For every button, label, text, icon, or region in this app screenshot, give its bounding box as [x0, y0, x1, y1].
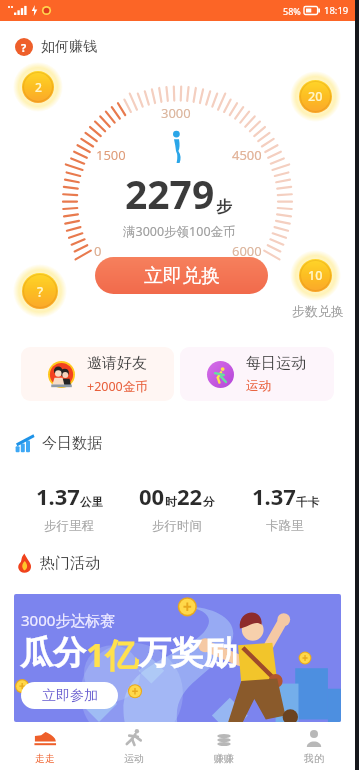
staticText: 万奖励 [138, 632, 237, 674]
staticText: 走走 [35, 752, 55, 765]
staticText: 立即兑换 [144, 264, 220, 288]
button[interactable]: ? [22, 273, 58, 309]
staticText: 如何赚钱 [41, 38, 97, 56]
staticText: 今日数据 [42, 434, 102, 453]
staticText: 步行里程 [44, 518, 94, 534]
staticText: 运动 [124, 752, 144, 765]
staticText: ? [37, 282, 44, 301]
staticText: 千卡 [296, 495, 319, 509]
staticText: 1亿 [86, 632, 138, 677]
staticText: 2279 [125, 167, 215, 220]
staticText: 20 [308, 88, 323, 105]
button[interactable]: 运动 [89, 722, 179, 770]
staticText: 我的 [304, 752, 324, 765]
button[interactable]: 走走 [0, 722, 89, 770]
staticText: 1500 [96, 146, 126, 164]
staticText: 58% [283, 5, 301, 17]
staticText: 每日运动 [246, 354, 306, 373]
button[interactable]: 赚赚 [179, 722, 269, 770]
button[interactable]: 20 [299, 80, 332, 113]
button[interactable]: 立即参加 [21, 682, 118, 709]
button[interactable]: 邀请好友 [21, 347, 174, 401]
staticText: 时 [165, 495, 177, 509]
staticText: 立即参加 [42, 687, 98, 705]
staticText: 步行时间 [152, 518, 202, 534]
button[interactable]: 每日运动 [180, 347, 334, 401]
button[interactable]: 3000步达标赛 [14, 594, 341, 722]
staticText: +2000金币 [87, 378, 148, 395]
button[interactable]: 我的 [269, 722, 359, 770]
staticText: 步 [216, 197, 232, 217]
staticText: 赚赚 [214, 752, 234, 765]
staticText: 22 [177, 481, 203, 511]
staticText: 3000步达标赛 [21, 610, 116, 630]
staticText: 1.37 [252, 481, 296, 511]
staticText: 10 [308, 267, 323, 284]
staticText: 4500 [232, 146, 262, 164]
staticText: 瓜分 [20, 632, 86, 674]
staticText: 3000 [161, 104, 191, 122]
staticText: 0 [94, 242, 102, 260]
staticText: 00 [139, 481, 165, 511]
staticText: 1.37 [36, 481, 80, 511]
staticText: 2 [35, 79, 42, 96]
button[interactable]: 立即兑换 [95, 257, 268, 294]
staticText: 6000 [232, 242, 262, 260]
staticText: 步数兑换 [292, 303, 344, 319]
button[interactable]: ? [15, 38, 97, 56]
staticText: 卡路里 [266, 518, 304, 534]
staticText: 热门活动 [40, 554, 100, 573]
staticText: 邀请好友 [87, 354, 147, 373]
staticText: 分 [203, 495, 215, 509]
button[interactable]: 2 [22, 71, 54, 103]
staticText: 运动 [246, 378, 271, 394]
staticText: 公里 [80, 495, 103, 509]
staticText: 满3000步领100金币 [123, 223, 236, 240]
staticText: ? [21, 40, 27, 55]
button[interactable]: 10 [299, 259, 332, 292]
staticText: 18:19 [324, 4, 349, 17]
